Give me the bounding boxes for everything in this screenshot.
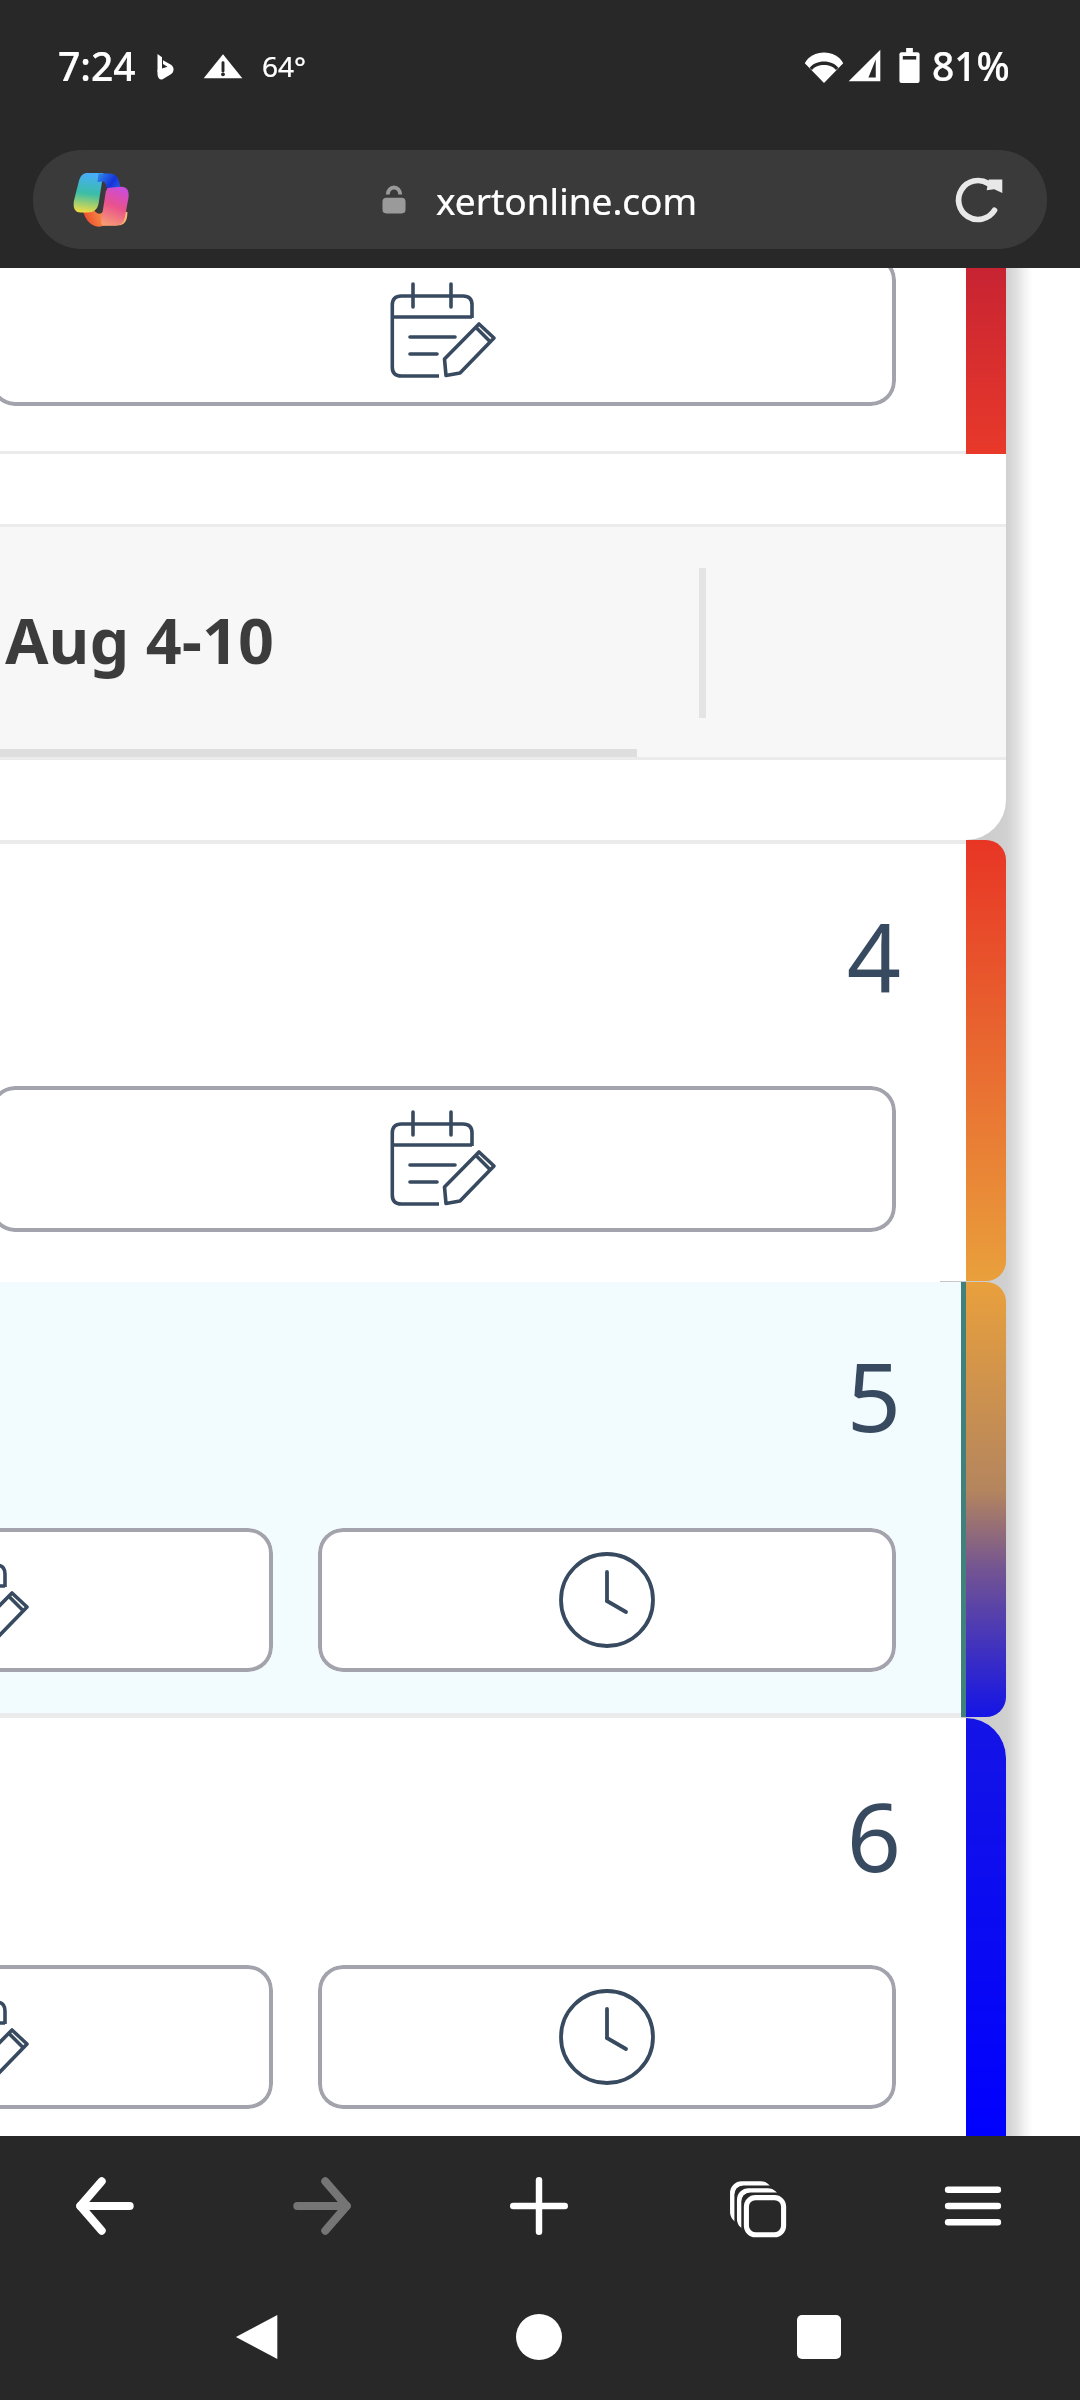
staticText: 81% — [932, 39, 1010, 92]
button[interactable]: xertonline.com — [33, 150, 1047, 249]
staticText: 6 — [0, 1770, 901, 1899]
button[interactable]: New tab — [491, 2158, 587, 2254]
button[interactable]: Menu — [925, 2158, 1021, 2254]
button[interactable]: Add note — [0, 1965, 273, 2109]
button[interactable]: Log time — [318, 1528, 896, 1672]
button[interactable]: Back — [57, 2158, 153, 2254]
button[interactable]: Reload — [951, 173, 1005, 227]
staticText: 5 — [0, 1330, 901, 1459]
button[interactable]: Recents — [771, 2289, 867, 2385]
staticText: 64° — [262, 47, 307, 85]
staticText: Aug 4-10 — [5, 597, 275, 683]
button[interactable]: Add note — [0, 1086, 896, 1232]
button[interactable]: Home — [491, 2289, 587, 2385]
button[interactable]: Add note — [0, 255, 896, 406]
button[interactable]: Tabs — [708, 2158, 804, 2254]
button[interactable]: Back — [210, 2289, 306, 2385]
button[interactable]: Log time — [318, 1965, 896, 2109]
staticText: 4 — [0, 890, 901, 1019]
staticText: xertonline.com — [436, 175, 698, 225]
button[interactable]: Forward — [274, 2158, 370, 2254]
staticText: 7:24 — [58, 39, 136, 92]
button[interactable]: Add note — [0, 1528, 273, 1672]
